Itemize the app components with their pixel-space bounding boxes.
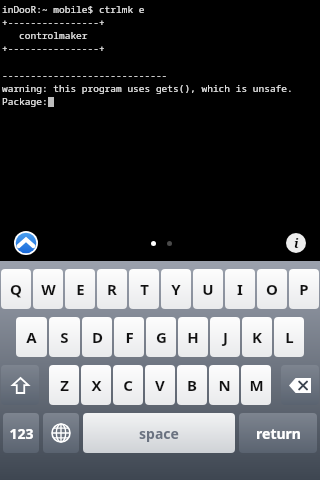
- button[interactable]: Shift: [1, 365, 39, 405]
- staticText: Q: [10, 279, 22, 299]
- staticText: 123: [9, 424, 34, 443]
- button[interactable]: return: [239, 413, 317, 453]
- button[interactable]: G: [146, 317, 176, 357]
- button[interactable]: Backspace: [281, 365, 319, 405]
- button[interactable]: space: [83, 413, 235, 453]
- staticText: inDooR:~ mobile$ ctrlmk e: [2, 3, 145, 16]
- staticText: F: [125, 327, 134, 347]
- button[interactable]: Change keyboard: [43, 413, 79, 453]
- staticText: S: [60, 327, 69, 347]
- button[interactable]: O: [257, 269, 287, 309]
- button[interactable]: V: [145, 365, 175, 405]
- button[interactable]: J: [210, 317, 240, 357]
- staticText: Z: [60, 375, 69, 395]
- staticText: I: [237, 279, 243, 299]
- staticText: L: [285, 327, 294, 347]
- staticText: X: [91, 375, 102, 395]
- button[interactable]: L: [274, 317, 304, 357]
- button[interactable]: 123: [3, 413, 39, 453]
- staticText: space: [139, 424, 179, 443]
- button[interactable]: A: [16, 317, 47, 357]
- button[interactable]: S: [49, 317, 80, 357]
- button[interactable]: X: [81, 365, 111, 405]
- staticText: H: [187, 327, 199, 347]
- staticText: T: [140, 279, 149, 299]
- staticText: P: [299, 279, 309, 299]
- staticText: controlmaker: [2, 29, 88, 42]
- button[interactable]: K: [242, 317, 272, 357]
- staticText: return: [256, 424, 301, 443]
- button[interactable]: D: [82, 317, 112, 357]
- staticText: A: [26, 327, 37, 347]
- staticText: C: [123, 375, 133, 395]
- button[interactable]: H: [178, 317, 208, 357]
- staticText: K: [252, 327, 262, 347]
- staticText: O: [266, 279, 278, 299]
- staticText: warning: this program uses gets(), which…: [2, 82, 293, 95]
- button[interactable]: W: [33, 269, 63, 309]
- button[interactable]: E: [65, 269, 95, 309]
- staticText: W: [41, 279, 56, 299]
- staticText: G: [156, 327, 167, 347]
- button[interactable]: P: [289, 269, 319, 309]
- button[interactable]: N: [209, 365, 239, 405]
- staticText: N: [218, 375, 231, 395]
- staticText: Package:: [2, 95, 48, 108]
- button[interactable]: B: [177, 365, 207, 405]
- button[interactable]: Scroll up: [14, 231, 38, 255]
- staticText: D: [92, 327, 103, 347]
- button[interactable]: R: [97, 269, 127, 309]
- staticText: V: [155, 375, 165, 395]
- staticText: -----------------------------: [2, 69, 168, 82]
- button[interactable]: C: [113, 365, 143, 405]
- staticText: B: [187, 375, 197, 395]
- staticText: E: [76, 279, 85, 299]
- button[interactable]: T: [129, 269, 159, 309]
- button[interactable]: Q: [1, 269, 31, 309]
- staticText: U: [202, 279, 214, 299]
- button[interactable]: I: [225, 269, 255, 309]
- button[interactable]: M: [241, 365, 271, 405]
- button[interactable]: Y: [161, 269, 191, 309]
- button[interactable]: Z: [49, 365, 79, 405]
- button[interactable]: Info: [286, 233, 306, 253]
- staticText: R: [107, 279, 117, 299]
- staticText: J: [223, 327, 228, 347]
- staticText: +----------------+: [2, 16, 105, 29]
- staticText: +----------------+: [2, 42, 105, 55]
- staticText: i: [294, 234, 299, 252]
- staticText: Y: [171, 279, 181, 299]
- button[interactable]: F: [114, 317, 144, 357]
- button[interactable]: U: [193, 269, 223, 309]
- staticText: M: [249, 375, 264, 395]
